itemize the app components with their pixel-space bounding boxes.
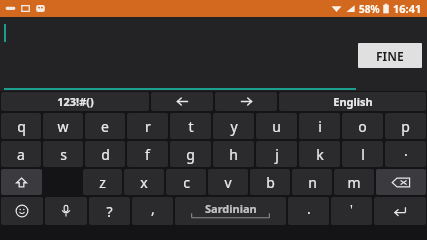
staticText: FINE xyxy=(376,48,404,64)
staticText: 58% xyxy=(359,2,380,16)
staticText: j xyxy=(275,145,279,164)
staticText: d xyxy=(101,145,110,164)
button[interactable]: y xyxy=(213,113,254,139)
button[interactable]: Move cursor right xyxy=(215,92,277,111)
staticText: , xyxy=(151,199,155,218)
button[interactable]: Shift xyxy=(1,169,42,195)
button[interactable]: 123!#() xyxy=(1,92,149,111)
button[interactable]: Voice input xyxy=(45,197,87,225)
button[interactable]: Space xyxy=(175,197,286,225)
button[interactable]: l xyxy=(342,141,383,167)
staticText: ' xyxy=(350,200,353,218)
staticText: y xyxy=(230,117,238,136)
button[interactable]: o xyxy=(342,113,383,139)
button[interactable]: q xyxy=(1,113,41,139)
button[interactable]: m xyxy=(334,169,374,195)
button[interactable]: , xyxy=(132,197,173,225)
button[interactable]: k xyxy=(299,141,340,167)
staticText: z xyxy=(99,173,106,192)
button[interactable]: j xyxy=(256,141,297,167)
button[interactable]: English xyxy=(279,92,426,111)
button[interactable]: Enter xyxy=(374,197,426,225)
button[interactable]: e xyxy=(85,113,125,139)
button[interactable]: g xyxy=(170,141,211,167)
staticText: h xyxy=(229,145,238,164)
button[interactable]: . xyxy=(288,197,329,225)
staticText: s xyxy=(60,145,67,164)
staticText: n xyxy=(308,173,317,192)
staticText: q xyxy=(17,117,26,136)
button[interactable]: t xyxy=(170,113,211,139)
staticText: e xyxy=(101,117,109,136)
staticText: x xyxy=(140,173,148,192)
staticText: w xyxy=(57,117,69,136)
staticText: p xyxy=(401,117,410,136)
staticText: i xyxy=(318,117,322,136)
button[interactable]: s xyxy=(43,141,83,167)
staticText: Sardinian xyxy=(205,201,257,216)
button[interactable]: ? xyxy=(89,197,130,225)
staticText: k xyxy=(316,145,324,164)
button[interactable]: · xyxy=(385,141,426,167)
staticText: g xyxy=(186,145,195,164)
staticText: c xyxy=(183,173,190,192)
staticText: o xyxy=(358,117,367,136)
staticText: a xyxy=(17,145,25,164)
staticText: · xyxy=(404,145,408,164)
staticText: r xyxy=(145,117,151,136)
button[interactable]: ' xyxy=(331,197,372,225)
button[interactable]: c xyxy=(166,169,206,195)
button[interactable]: FINE xyxy=(358,43,422,68)
staticText: u xyxy=(272,117,281,136)
button[interactable]: z xyxy=(83,169,122,195)
staticText: 16:41 xyxy=(393,1,422,16)
staticText: . xyxy=(307,199,311,218)
staticText: v xyxy=(224,173,232,192)
button[interactable]: d xyxy=(85,141,125,167)
button[interactable]: Backspace xyxy=(376,169,426,195)
button[interactable]: i xyxy=(299,113,340,139)
button[interactable]: x xyxy=(124,169,164,195)
button[interactable]: w xyxy=(43,113,83,139)
staticText: b xyxy=(266,173,275,192)
staticText: l xyxy=(361,145,365,164)
button[interactable]: r xyxy=(127,113,168,139)
staticText: f xyxy=(145,145,150,164)
staticText: English xyxy=(333,94,373,109)
button[interactable]: a xyxy=(1,141,41,167)
staticText: m xyxy=(347,173,361,192)
button[interactable]: p xyxy=(385,113,426,139)
staticText: t xyxy=(188,117,194,136)
button[interactable]: f xyxy=(127,141,168,167)
button[interactable]: n xyxy=(292,169,332,195)
staticText: ? xyxy=(106,202,113,221)
button[interactable]: Move cursor left xyxy=(151,92,213,111)
button[interactable]: Emoji xyxy=(1,197,43,225)
staticText: 123!#() xyxy=(57,94,94,109)
button[interactable]: v xyxy=(208,169,248,195)
button[interactable]: b xyxy=(250,169,290,195)
button[interactable]: u xyxy=(256,113,297,139)
button[interactable]: h xyxy=(213,141,254,167)
